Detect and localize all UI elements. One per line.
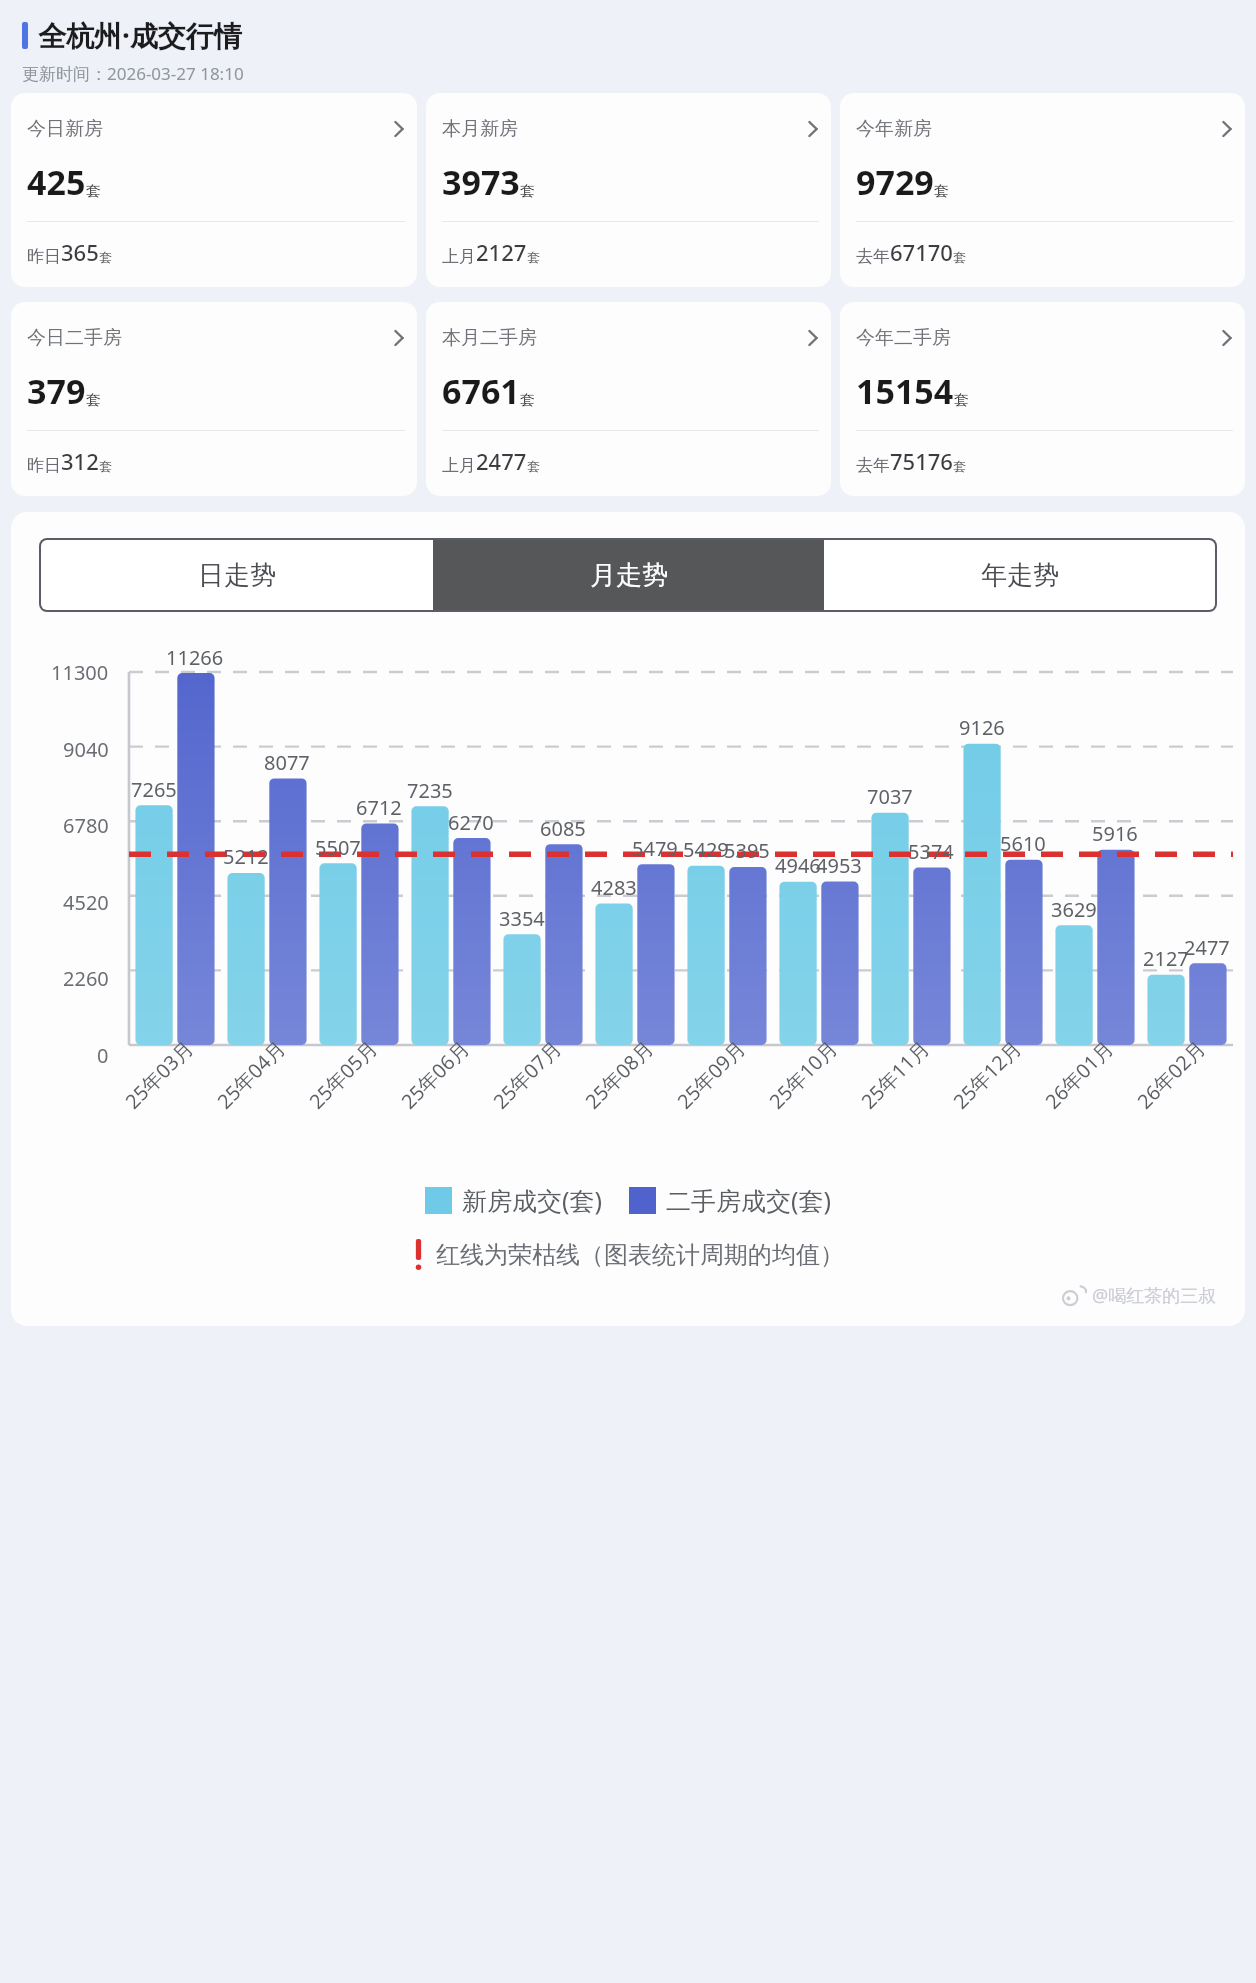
button[interactable]: 月走势: [433, 540, 824, 610]
staticText: 7037: [867, 783, 913, 810]
staticText: 更新时间：2026-03-27 18:10: [22, 62, 244, 85]
button[interactable]: 今年新房: [840, 93, 1245, 287]
staticText: 3354: [499, 905, 545, 932]
staticText: 425: [27, 159, 86, 205]
staticText: 昨日: [27, 246, 61, 267]
other: 查看本月二手房: [807, 328, 819, 348]
staticText: 6712: [356, 794, 402, 821]
staticText: 0: [97, 1042, 109, 1069]
staticText: 25年04月: [211, 1034, 291, 1114]
staticText: 25年07月: [487, 1034, 567, 1114]
staticText: 今年二手房: [856, 326, 951, 350]
other: 查看今日二手房: [393, 328, 405, 348]
staticText: 今年新房: [856, 117, 932, 141]
staticText: @喝红茶的三叔: [1092, 1283, 1217, 1308]
staticText: 去年: [856, 246, 890, 267]
staticText: 套: [954, 391, 969, 410]
staticText: 5507: [315, 834, 361, 861]
button[interactable]: 本月二手房: [426, 302, 831, 496]
staticText: 2477: [1184, 934, 1230, 961]
staticText: 2127: [476, 237, 527, 267]
staticText: 75176: [890, 446, 953, 476]
staticText: 25年08月: [579, 1034, 659, 1114]
staticText: 二手房成交(套): [666, 1183, 832, 1217]
staticText: 4283: [591, 874, 637, 901]
staticText: 上月: [442, 455, 476, 476]
staticText: 15154: [856, 368, 954, 414]
staticText: 4946: [775, 852, 821, 879]
staticText: 套: [953, 458, 966, 474]
staticText: 套: [527, 249, 540, 265]
staticText: 今日新房: [27, 117, 103, 141]
staticText: 去年: [856, 455, 890, 476]
staticText: 昨日: [27, 455, 61, 476]
staticText: 5610: [1000, 830, 1046, 857]
staticText: 2260: [63, 965, 109, 992]
staticText: 3629: [1051, 896, 1097, 923]
staticText: 套: [934, 182, 949, 201]
other: 查看今年二手房: [1221, 328, 1233, 348]
staticText: 本月新房: [442, 117, 518, 141]
staticText: 5916: [1092, 820, 1138, 847]
staticText: 套: [86, 182, 101, 201]
staticText: 11266: [166, 644, 224, 671]
staticText: 6270: [448, 809, 494, 836]
staticText: 上月: [442, 246, 476, 267]
staticText: 7265: [131, 776, 177, 803]
staticText: 今日二手房: [27, 326, 122, 350]
staticText: 7235: [407, 777, 453, 804]
other: 查看今年新房: [1221, 119, 1233, 139]
staticText: 6780: [63, 812, 109, 839]
staticText: 套: [520, 391, 535, 410]
staticText: 26年01月: [1039, 1034, 1119, 1114]
staticText: 本月二手房: [442, 326, 537, 350]
staticText: 25年09月: [671, 1034, 751, 1114]
staticText: 日走势: [198, 559, 276, 592]
button[interactable]: 今日二手房: [11, 302, 417, 496]
staticText: 312: [61, 446, 99, 476]
staticText: 379: [27, 368, 86, 414]
staticText: 套: [953, 249, 966, 265]
staticText: 8077: [264, 749, 310, 776]
staticText: 5374: [908, 838, 954, 865]
staticText: 9126: [959, 714, 1005, 741]
staticText: 红线为荣枯线（图表统计周期的均值）: [436, 1240, 844, 1270]
staticText: 25年10月: [763, 1034, 843, 1114]
staticText: 9040: [63, 736, 109, 763]
staticText: 全杭州·成交行情: [38, 16, 242, 54]
staticText: 5479: [632, 835, 678, 862]
staticText: 26年02月: [1131, 1034, 1211, 1114]
button[interactable]: 日走势: [41, 540, 433, 610]
staticText: 2477: [476, 446, 527, 476]
other: 查看今日新房: [393, 119, 405, 139]
staticText: 6085: [540, 815, 586, 842]
staticText: 25年03月: [119, 1034, 199, 1114]
staticText: 5212: [223, 843, 269, 870]
staticText: 25年12月: [947, 1034, 1027, 1114]
staticText: 11300: [51, 659, 109, 686]
staticText: 5395: [724, 837, 770, 864]
staticText: 3973: [442, 159, 520, 205]
staticText: 4953: [816, 852, 862, 879]
staticText: 套: [99, 458, 112, 474]
staticText: 5429: [683, 836, 729, 863]
staticText: 9729: [856, 159, 934, 205]
staticText: 年走势: [981, 559, 1059, 592]
button[interactable]: 本月新房: [426, 93, 831, 287]
staticText: 4520: [63, 889, 109, 916]
button[interactable]: 今年二手房: [840, 302, 1245, 496]
staticText: 套: [520, 182, 535, 201]
staticText: 25年05月: [303, 1034, 383, 1114]
staticText: 套: [527, 458, 540, 474]
staticText: 新房成交(套): [462, 1183, 603, 1217]
staticText: 套: [99, 249, 112, 265]
staticText: 套: [86, 391, 101, 410]
staticText: 月走势: [590, 559, 668, 592]
staticText: 6761: [442, 368, 520, 414]
staticText: 2127: [1143, 945, 1189, 972]
staticText: 67170: [890, 237, 953, 267]
staticText: 25年06月: [395, 1034, 475, 1114]
staticText: 25年11月: [855, 1034, 935, 1114]
button[interactable]: 年走势: [824, 540, 1215, 610]
button[interactable]: 今日新房: [11, 93, 417, 287]
